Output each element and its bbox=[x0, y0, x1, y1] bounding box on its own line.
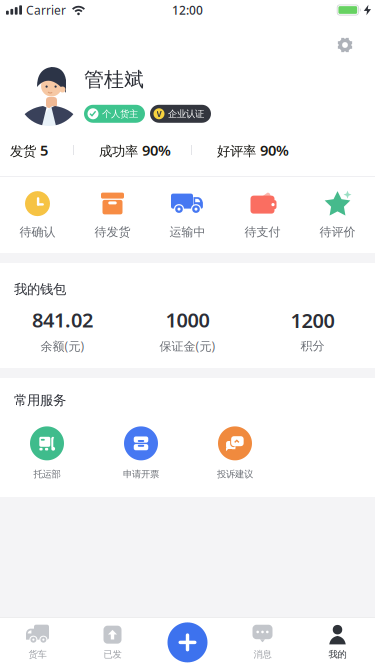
button[interactable]: 待确认 bbox=[0, 177, 75, 253]
button[interactable]: 1000 bbox=[125, 306, 250, 354]
staticText: 1200 bbox=[290, 307, 334, 334]
button[interactable]: 已发 bbox=[75, 618, 150, 667]
staticText: 我的钱包 bbox=[14, 281, 66, 297]
staticText: 运输中 bbox=[169, 225, 205, 239]
button[interactable]: 我的 bbox=[300, 618, 375, 667]
staticText: 企业认证 bbox=[168, 108, 204, 120]
button[interactable]: 发布 bbox=[150, 618, 225, 667]
staticText: 常用服务 bbox=[14, 392, 66, 408]
button[interactable]: 投诉建议 bbox=[188, 426, 282, 480]
button[interactable]: 1200 bbox=[250, 307, 375, 353]
staticText: V bbox=[156, 108, 161, 119]
staticText: 托运部 bbox=[33, 468, 60, 480]
staticText: 已发 bbox=[103, 649, 121, 660]
staticText: 申请开票 bbox=[123, 468, 159, 480]
button[interactable]: 货车 bbox=[0, 618, 75, 667]
staticText: 1000 bbox=[165, 306, 209, 333]
button[interactable]: 个人资料 bbox=[18, 64, 211, 126]
staticText: 待评价 bbox=[319, 225, 355, 239]
button[interactable]: 待支付 bbox=[225, 177, 300, 253]
staticText: 个人货主 bbox=[102, 108, 138, 120]
staticText: 保证金(元) bbox=[159, 338, 215, 354]
button[interactable]: 托运部 bbox=[0, 426, 94, 480]
staticText: 余额(元) bbox=[40, 338, 84, 354]
staticText: 投诉建议 bbox=[217, 468, 253, 480]
staticText: 12:00 bbox=[172, 2, 203, 18]
staticText: 待支付 bbox=[244, 225, 280, 239]
staticText: 消息 bbox=[253, 649, 271, 660]
button[interactable]: Settings bbox=[330, 30, 360, 60]
staticText: 好评率 90% bbox=[217, 140, 289, 160]
staticText: 发货 5 bbox=[10, 140, 48, 160]
staticText: 成功率 90% bbox=[99, 140, 171, 160]
staticText: 积分 bbox=[300, 338, 324, 353]
button[interactable]: 消息 bbox=[225, 618, 300, 667]
staticText: 待确认 bbox=[19, 225, 55, 239]
staticText: 管桂斌 bbox=[84, 67, 144, 92]
staticText: 待发货 bbox=[94, 225, 130, 239]
button[interactable]: 运输中 bbox=[150, 177, 225, 253]
button[interactable]: 待评价 bbox=[300, 177, 375, 253]
button[interactable]: 待发货 bbox=[75, 177, 150, 253]
button[interactable]: 841.02 bbox=[0, 306, 125, 354]
staticText: 我的 bbox=[328, 649, 346, 660]
button[interactable]: 申请开票 bbox=[94, 426, 188, 480]
staticText: 货车 bbox=[28, 649, 46, 660]
staticText: Carrier bbox=[26, 2, 66, 18]
staticText: 841.02 bbox=[32, 306, 93, 333]
